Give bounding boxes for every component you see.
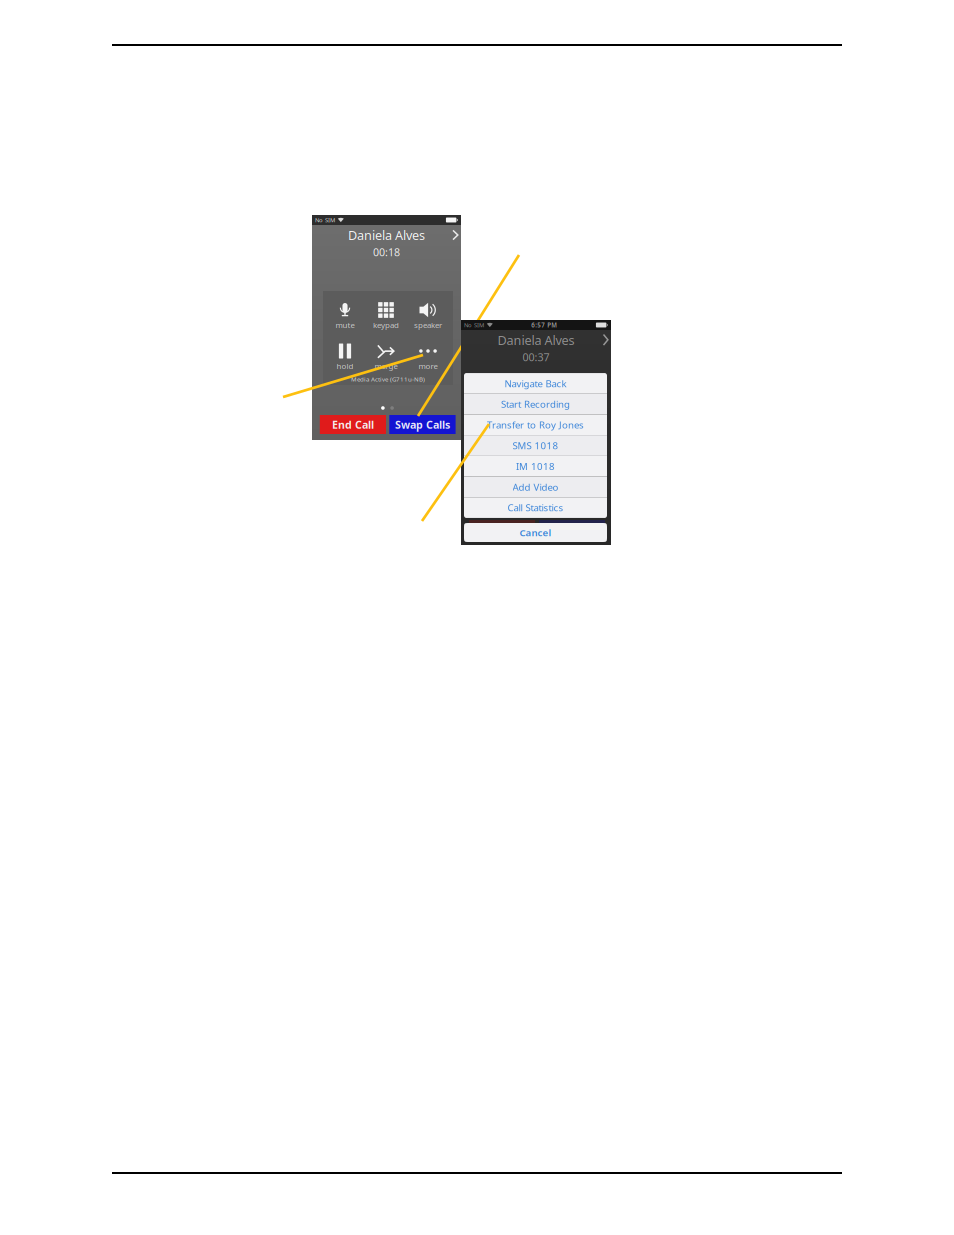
staticText: 00:18 (373, 245, 400, 259)
staticText: IM 1018 (516, 460, 555, 473)
staticText: Daniela Alves (348, 226, 425, 244)
staticText: Daniela Alves (497, 331, 574, 349)
staticText: speaker (414, 320, 442, 330)
button[interactable]: IM 1018 (464, 456, 607, 477)
staticText: Transfer to Roy Jones (487, 418, 584, 431)
staticText: Swap Calls (395, 417, 450, 432)
staticText: 6:57 PM (531, 321, 557, 329)
staticText: Cancel (519, 526, 551, 539)
staticText: 00:37 (522, 350, 549, 364)
staticText: merge (374, 361, 397, 371)
button[interactable]: SMS 1018 (464, 435, 607, 456)
staticText: End Call (332, 417, 374, 432)
button[interactable]: Swap Calls (389, 415, 456, 434)
staticText: keypad (373, 320, 399, 330)
button[interactable]: Navigate Back (464, 373, 607, 394)
button[interactable]: more (407, 342, 449, 372)
button[interactable]: hold (324, 342, 366, 372)
staticText: No SIM (464, 321, 484, 329)
staticText: Call Statistics (507, 501, 563, 514)
staticText: Media Active (G711u-NB) (351, 375, 425, 383)
staticText: SMS 1018 (512, 439, 558, 452)
button[interactable]: Start Recording (464, 394, 607, 414)
button[interactable]: Cancel (464, 523, 607, 542)
staticText: Navigate Back (504, 377, 566, 390)
button[interactable]: Add Video (464, 477, 607, 497)
button[interactable]: Call Statistics (464, 497, 607, 518)
staticText: more (418, 361, 437, 371)
staticText: Start Recording (501, 397, 570, 411)
button[interactable]: Call details (449, 225, 461, 245)
staticText: No SIM (315, 216, 335, 224)
button[interactable]: End Call (320, 415, 386, 434)
staticText: Add Video (512, 480, 558, 493)
staticText: mute (335, 320, 354, 330)
button[interactable]: mute (324, 301, 366, 331)
button[interactable]: keypad (365, 301, 407, 331)
staticText: hold (336, 361, 353, 371)
button[interactable]: speaker (407, 301, 449, 331)
button[interactable]: Call details (599, 330, 611, 350)
button[interactable]: Transfer to Roy Jones (464, 414, 607, 435)
button[interactable]: merge (365, 342, 407, 372)
